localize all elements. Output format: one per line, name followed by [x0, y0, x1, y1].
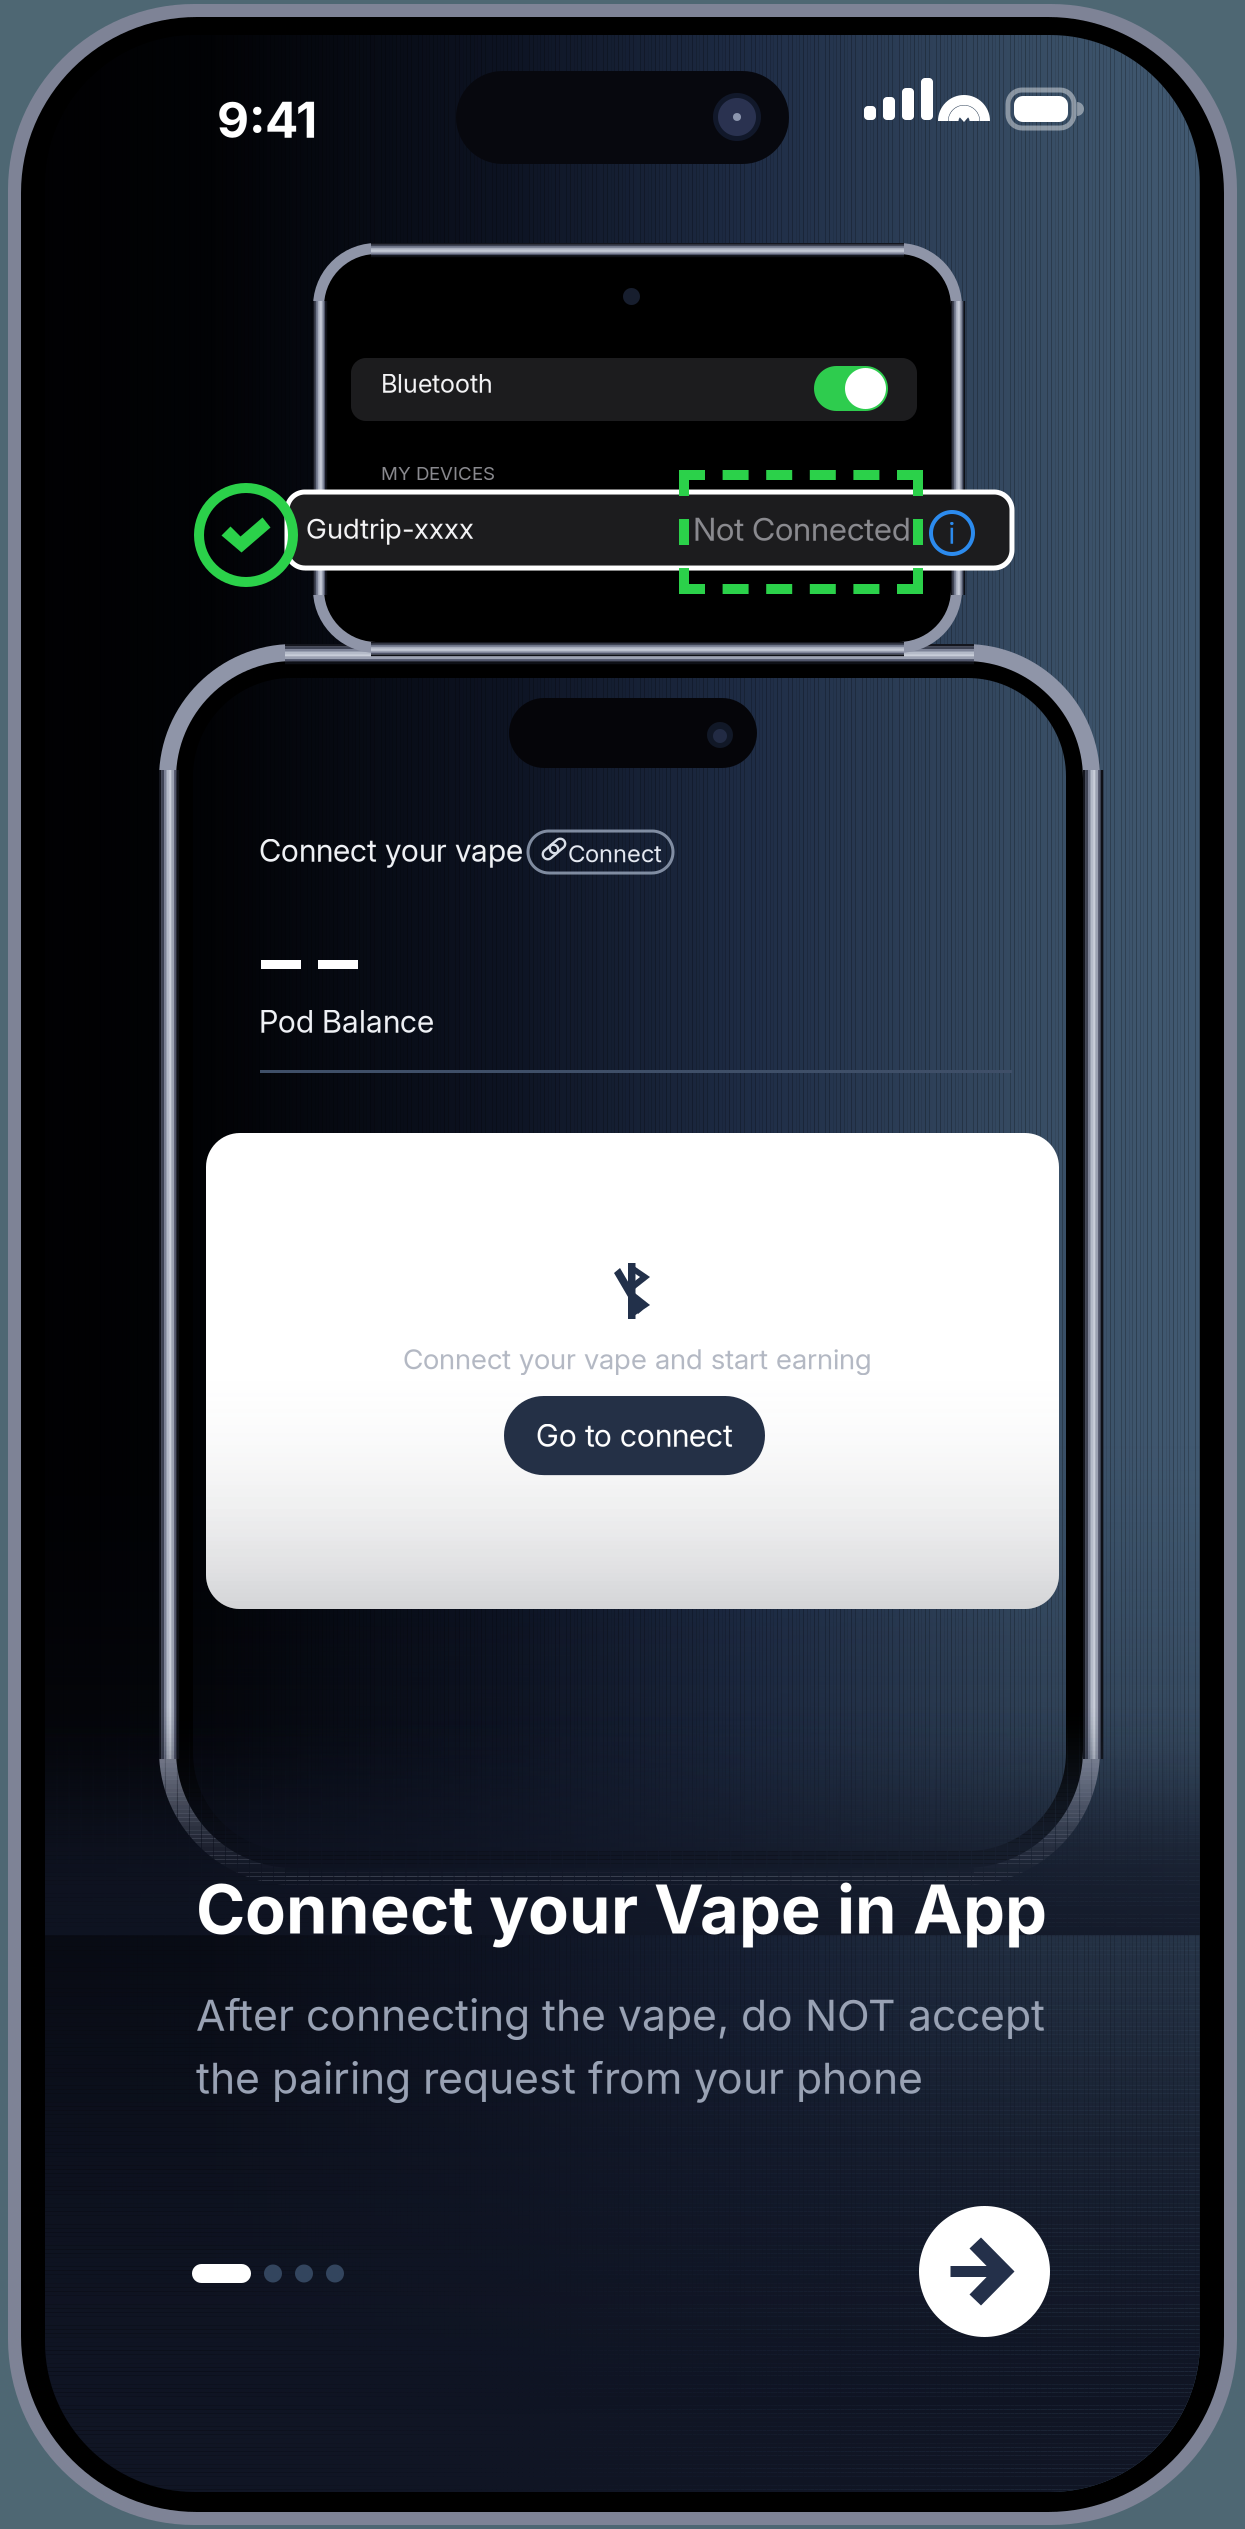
staticText: Connect your Vape in App: [196, 1869, 1047, 1950]
staticText: After connecting the vape, do NOT accept: [196, 1989, 1045, 2041]
staticText: Go to connect: [536, 1417, 733, 1454]
staticText: Bluetooth: [381, 368, 493, 399]
staticText: i: [948, 515, 955, 551]
button[interactable]: Next: [919, 2206, 1050, 2337]
staticText: Connect your vape: [259, 832, 523, 869]
staticText: Connect your vape and start earning: [403, 1342, 872, 1376]
staticText: Gudtrip-xxxx: [306, 512, 474, 546]
staticText: Not Connected: [693, 510, 911, 548]
staticText: Pod Balance: [259, 1003, 434, 1040]
staticText: the pairing request from your phone: [196, 2052, 923, 2104]
staticText: MY DEVICES: [381, 462, 495, 484]
staticText: Connect: [568, 839, 662, 868]
button[interactable]: Go to connect: [504, 1396, 765, 1475]
staticText: 9:41: [217, 90, 317, 150]
